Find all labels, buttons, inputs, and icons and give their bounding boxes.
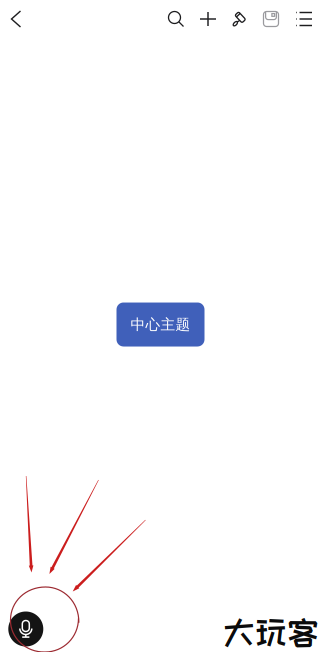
staticText: 中心主题	[130, 315, 190, 333]
button[interactable]: Style	[225, 0, 255, 39]
button[interactable]: Voice input	[8, 611, 43, 646]
button[interactable]: Add topic	[193, 0, 223, 39]
button[interactable]: Save	[256, 0, 286, 39]
button[interactable]: 中心主题	[116, 302, 204, 346]
button[interactable]: Search	[161, 0, 191, 39]
staticText: 大玩客	[223, 615, 319, 649]
button[interactable]: Back	[1, 0, 31, 39]
button[interactable]: Outline	[289, 0, 319, 39]
